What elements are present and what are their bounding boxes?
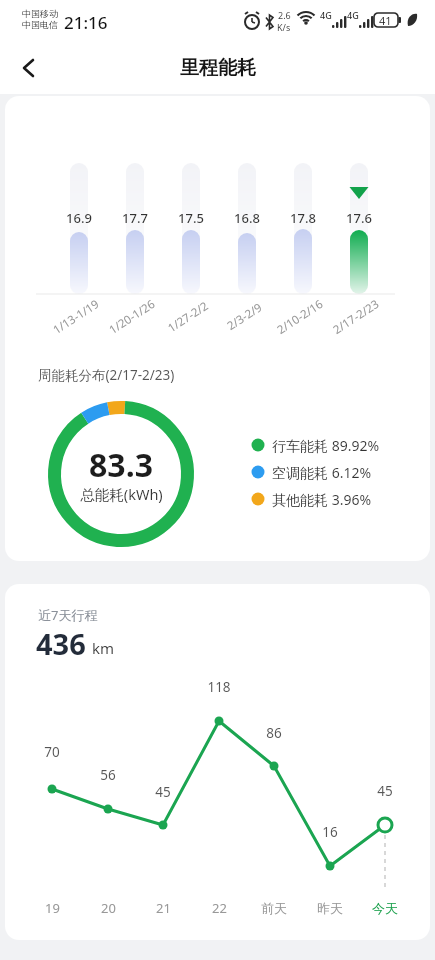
staticText: 56	[100, 766, 116, 784]
staticText: 中国移动	[22, 8, 58, 19]
staticText: K/s	[277, 21, 291, 33]
staticText: 周能耗分布(2/17-2/23)	[38, 366, 175, 384]
staticText: 21:16	[64, 11, 108, 34]
staticText: 1/13-1/19	[50, 296, 102, 338]
staticText: 行车能耗 89.92%	[272, 436, 380, 455]
staticText: 2.6	[278, 9, 291, 21]
staticText: 83.3	[89, 443, 153, 483]
staticText: 前天	[261, 900, 287, 916]
staticText: 45	[377, 782, 393, 800]
staticText: 16.9	[66, 209, 92, 227]
staticText: 空调能耗 6.12%	[272, 463, 372, 482]
staticText: 4G	[347, 9, 359, 21]
staticText: 86	[266, 724, 282, 742]
staticText: 17.8	[290, 209, 316, 227]
staticText: km	[92, 638, 115, 658]
button[interactable]	[20, 58, 40, 78]
staticText: 今天	[372, 900, 398, 916]
staticText: 20	[101, 899, 116, 917]
staticText: 近7天行程	[38, 606, 98, 624]
staticText: 中国电信	[22, 19, 58, 30]
staticText: 总能耗(kWh)	[80, 484, 163, 504]
staticText: 4G	[320, 9, 332, 21]
staticText: 19	[45, 899, 60, 917]
staticText: 2/10-2/16	[274, 296, 326, 338]
staticText: 2/17-2/23	[330, 296, 382, 338]
staticText: 昨天	[317, 900, 343, 916]
staticText: 17.7	[122, 209, 148, 227]
staticText: 22	[212, 899, 227, 917]
staticText: 45	[155, 783, 171, 801]
staticText: 里程能耗	[180, 56, 256, 80]
staticText: 其他能耗 3.96%	[272, 490, 372, 509]
staticText: 436	[36, 624, 86, 663]
staticText: 1/27-2/2	[164, 298, 212, 336]
staticText: 16.8	[234, 209, 260, 227]
staticText: 70	[44, 743, 60, 761]
staticText: 17.6	[346, 209, 372, 227]
staticText: 1/20-1/26	[106, 296, 158, 338]
staticText: 21	[156, 899, 171, 917]
staticText: 118	[207, 678, 231, 696]
staticText: 41	[379, 13, 392, 28]
staticText: 17.5	[178, 209, 204, 227]
staticText: 2/3-2/9	[224, 299, 265, 334]
staticText: 16	[322, 823, 338, 841]
